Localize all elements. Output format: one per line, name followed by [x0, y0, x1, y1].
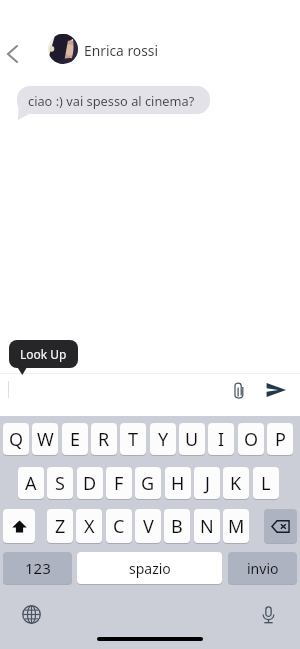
- staticText: 123: [25, 558, 51, 578]
- button[interactable]: Back: [0, 38, 32, 69]
- button[interactable]: S: [47, 467, 73, 499]
- staticText: Y: [158, 427, 169, 452]
- staticText: W: [37, 427, 54, 452]
- button[interactable]: P: [267, 423, 293, 455]
- button[interactable]: invio: [228, 552, 297, 584]
- button[interactable]: M: [223, 509, 249, 543]
- button[interactable]: Look Up: [9, 340, 78, 368]
- staticText: D: [83, 471, 97, 496]
- staticText: V: [143, 514, 154, 539]
- button[interactable]: V: [135, 509, 161, 543]
- button[interactable]: 123: [3, 552, 72, 584]
- button[interactable]: F: [106, 467, 132, 499]
- button[interactable]: Q: [3, 423, 29, 455]
- staticText: U: [185, 427, 199, 452]
- staticText: T: [128, 427, 139, 452]
- staticText: F: [114, 471, 124, 496]
- staticText: K: [230, 471, 242, 496]
- staticText: B: [171, 514, 183, 539]
- staticText: P: [275, 427, 286, 452]
- button[interactable]: E: [62, 423, 88, 455]
- button[interactable]: Z: [47, 509, 73, 543]
- button[interactable]: Backspace: [264, 509, 297, 543]
- button[interactable]: O: [238, 423, 264, 455]
- button[interactable]: Switch keyboard language: [19, 602, 43, 626]
- button[interactable]: N: [194, 509, 220, 543]
- button[interactable]: Send: [262, 376, 290, 404]
- button[interactable]: H: [165, 467, 191, 499]
- button[interactable]: U: [179, 423, 205, 455]
- staticText: G: [141, 471, 155, 496]
- button[interactable]: T: [120, 423, 146, 455]
- staticText: E: [70, 427, 81, 452]
- button[interactable]: L: [253, 467, 279, 499]
- button[interactable]: I: [208, 423, 234, 455]
- staticText: R: [98, 427, 110, 452]
- button[interactable]: W: [32, 423, 58, 455]
- button[interactable]: X: [76, 509, 102, 543]
- staticText: C: [113, 514, 125, 539]
- staticText: Look Up: [20, 346, 67, 362]
- staticText: Q: [9, 427, 24, 452]
- button[interactable]: R: [91, 423, 117, 455]
- button[interactable]: Dictate: [256, 602, 280, 626]
- staticText: invio: [247, 559, 279, 578]
- staticText: L: [261, 471, 271, 496]
- button[interactable]: K: [223, 467, 249, 499]
- button[interactable]: Y: [150, 423, 176, 455]
- staticText: A: [25, 471, 37, 496]
- staticText: N: [200, 514, 214, 539]
- staticText: O: [244, 427, 259, 452]
- button[interactable]: B: [164, 509, 190, 543]
- button[interactable]: ciao :) vai spesso al cinema?: [17, 86, 210, 114]
- staticText: J: [205, 471, 210, 496]
- staticText: S: [55, 471, 65, 496]
- button[interactable]: Shift: [3, 509, 35, 543]
- staticText: I: [218, 427, 225, 452]
- staticText: ciao :) vai spesso al cinema?: [28, 92, 195, 109]
- staticText: X: [84, 514, 95, 539]
- staticText: H: [171, 471, 185, 496]
- button[interactable]: C: [106, 509, 132, 543]
- button[interactable]: Attach file: [228, 379, 250, 401]
- button[interactable]: D: [77, 467, 103, 499]
- button[interactable]: J: [194, 467, 220, 499]
- staticText: M: [228, 514, 245, 539]
- button[interactable]: G: [135, 467, 161, 499]
- staticText: Z: [55, 514, 66, 539]
- staticText: spazio: [129, 559, 171, 578]
- button[interactable]: A: [18, 467, 44, 499]
- button[interactable]: spazio: [77, 552, 222, 584]
- staticText: Enrica rossi: [84, 41, 158, 60]
